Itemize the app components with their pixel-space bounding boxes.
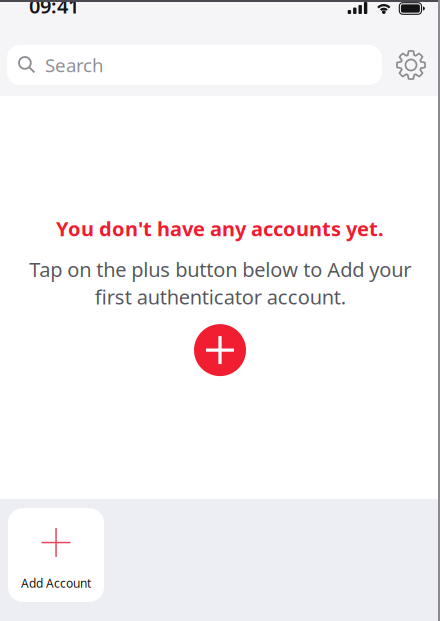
button[interactable]: Settings [382, 45, 440, 85]
staticText: 09:41 [29, 0, 79, 19]
button[interactable]: Add Account [8, 508, 104, 602]
button[interactable]: Search [7, 45, 382, 85]
button[interactable]: Add account [194, 324, 246, 376]
staticText: Search [45, 53, 104, 77]
staticText: Add Account [21, 575, 91, 591]
staticText: You don't have any accounts yet. [56, 215, 384, 242]
staticText: Tap on the plus button below to Add your… [29, 256, 411, 310]
